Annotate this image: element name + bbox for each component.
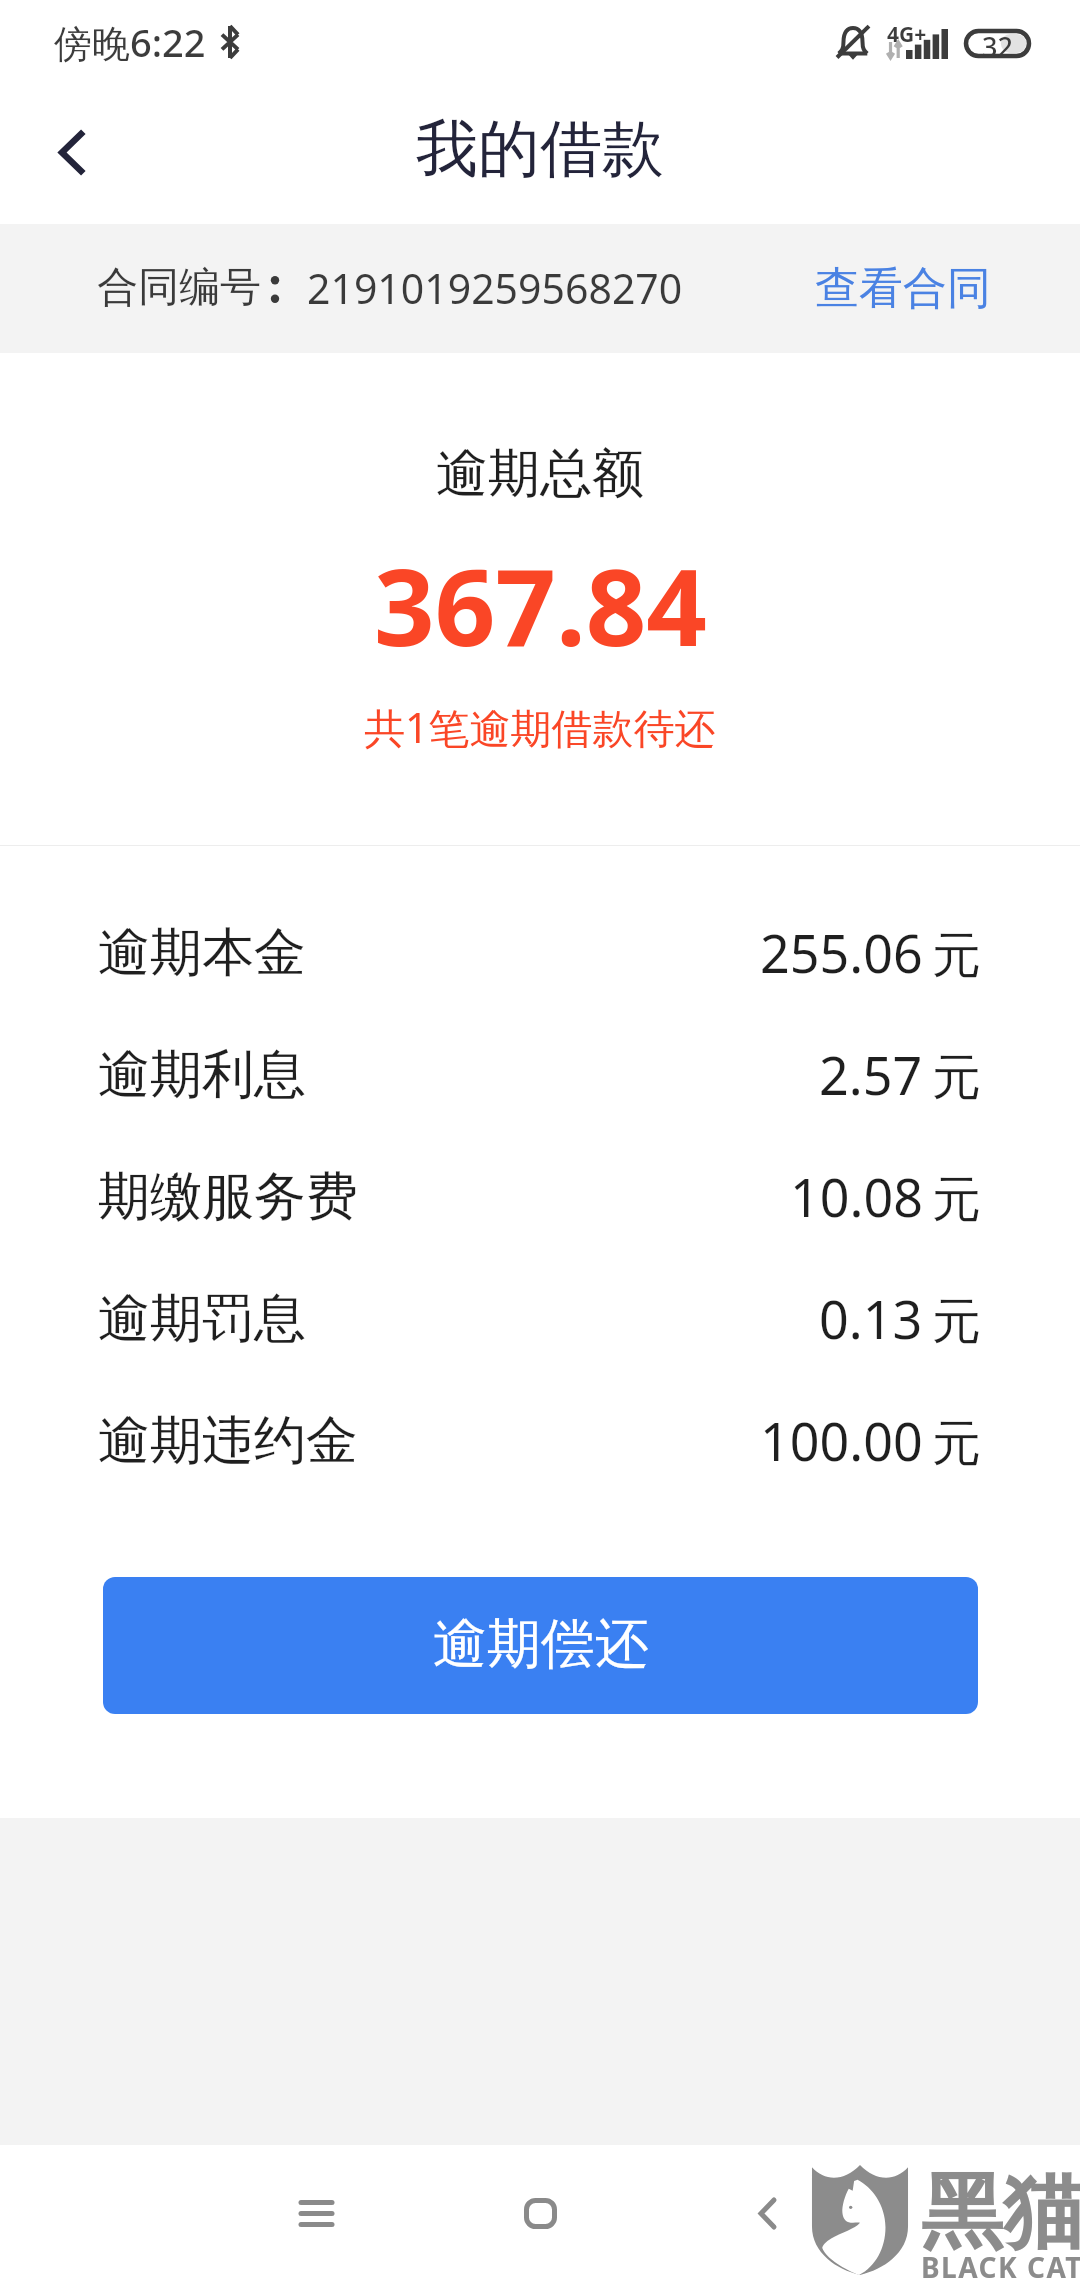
staticText: 0.13 — [819, 1283, 923, 1354]
staticText: 32 — [982, 28, 1013, 57]
staticText: 共1笔逾期借款待还 — [364, 699, 716, 755]
button[interactable]: 逾期罚息 — [0, 1286, 1080, 1408]
staticText: 傍晚6:22 — [54, 16, 206, 68]
button[interactable]: 逾期利息 — [0, 1042, 1080, 1164]
staticText: 100.00 — [760, 1405, 923, 1476]
staticText: 黑猫 — [921, 2161, 1080, 2264]
staticText: 查看合同 — [815, 261, 991, 316]
staticText: 元 — [932, 1413, 981, 1475]
staticText: 逾期本金 — [98, 920, 306, 986]
button[interactable]: 逾期违约金 — [0, 1408, 1080, 1530]
button[interactable]: Back — [707, 2153, 827, 2273]
staticText: 合同编号 — [97, 262, 261, 314]
staticText: 元 — [932, 1047, 981, 1109]
staticText: 367.84 — [374, 533, 707, 677]
staticText: 255.06 — [760, 917, 923, 988]
staticText: 逾期罚息 — [98, 1286, 306, 1352]
button[interactable]: Back — [0, 84, 140, 224]
button[interactable]: 逾期偿还 — [103, 1577, 978, 1714]
button[interactable]: 期缴服务费 — [0, 1164, 1080, 1286]
staticText: 元 — [932, 1291, 981, 1353]
staticText: 元 — [932, 925, 981, 987]
staticText: 期缴服务费 — [98, 1164, 358, 1230]
staticText: 逾期总额 — [436, 441, 644, 507]
staticText: 我的借款 — [416, 110, 664, 188]
staticText: 4G+ — [887, 20, 927, 49]
staticText: 2191019259568270 — [307, 260, 683, 316]
staticText: 逾期违约金 — [98, 1408, 358, 1474]
button[interactable]: Menu — [256, 2153, 376, 2273]
button[interactable]: 查看合同 — [815, 224, 991, 353]
staticText: 10.08 — [790, 1161, 923, 1232]
staticText: 逾期偿还 — [433, 1610, 649, 1678]
button[interactable]: Home — [480, 2153, 600, 2273]
staticText: BLACK CAT — [921, 2248, 1080, 2280]
button[interactable]: 逾期本金 — [0, 920, 1080, 1042]
staticText: 逾期利息 — [98, 1042, 306, 1108]
staticText: 2.57 — [819, 1039, 923, 1110]
staticText: 元 — [932, 1169, 981, 1231]
